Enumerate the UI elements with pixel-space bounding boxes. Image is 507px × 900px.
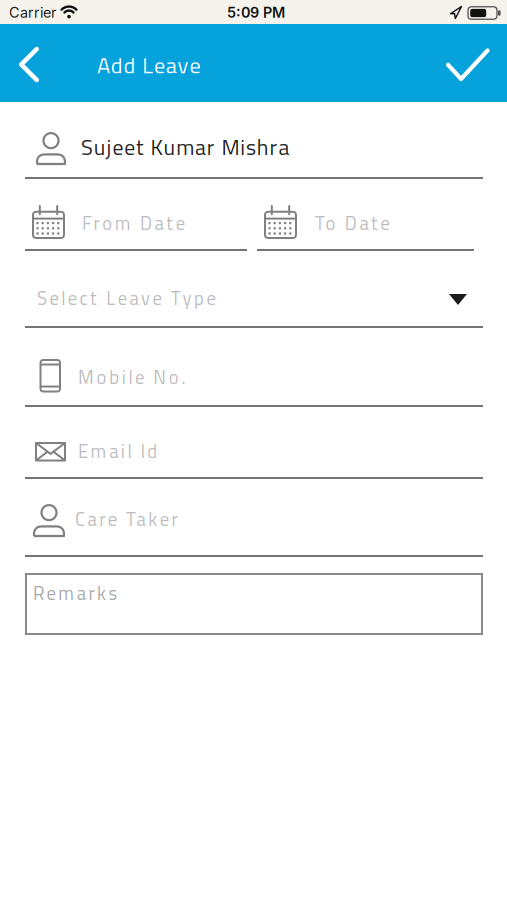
button[interactable]: Mobile No.: [25, 352, 483, 404]
button[interactable]: From Date: [25, 202, 247, 252]
button[interactable]: Done: [437, 36, 499, 93]
staticText: 5:09 PM: [227, 4, 285, 21]
staticText: Remarks: [33, 579, 118, 607]
button[interactable]: Remarks: [25, 573, 483, 635]
staticText: Care Taker: [75, 505, 177, 533]
staticText: From Date: [82, 209, 185, 237]
staticText: Email Id: [78, 437, 157, 465]
button[interactable]: Care Taker: [25, 498, 483, 554]
staticText: To Date: [315, 209, 390, 237]
button[interactable]: Back: [8, 34, 56, 94]
button[interactable]: Sujeet Kumar Mishra: [25, 120, 483, 177]
staticText: Add Leave: [97, 48, 200, 82]
button[interactable]: To Date: [257, 202, 474, 252]
staticText: Select Leave Type: [37, 284, 216, 312]
button[interactable]: Select Leave Type: [25, 275, 483, 325]
staticText: Carrier: [9, 4, 56, 21]
button[interactable]: Email Id: [25, 428, 483, 476]
staticText: Mobile No.: [78, 363, 185, 391]
staticText: Sujeet Kumar Mishra: [81, 130, 289, 164]
